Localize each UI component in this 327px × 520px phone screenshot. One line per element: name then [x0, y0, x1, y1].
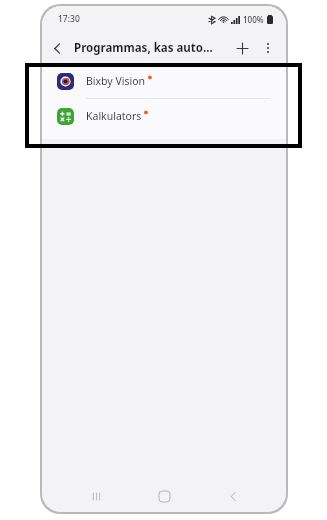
button[interactable]: Back — [218, 481, 248, 511]
button[interactable]: More options — [255, 35, 281, 61]
button[interactable]: Bixby Vision — [42, 64, 286, 99]
button[interactable]: Home — [149, 481, 179, 511]
button[interactable]: Add — [229, 35, 255, 61]
button[interactable]: Back — [42, 33, 72, 63]
button[interactable]: Recents — [81, 481, 111, 511]
staticText: Kalkulators — [86, 109, 142, 123]
staticText: 100% — [243, 14, 264, 25]
staticText: 17:30 — [58, 13, 80, 25]
button[interactable]: Kalkulators — [42, 99, 286, 133]
staticText: Bixby Vision — [86, 74, 146, 88]
staticText: Programmas, kas auto... — [74, 40, 229, 56]
